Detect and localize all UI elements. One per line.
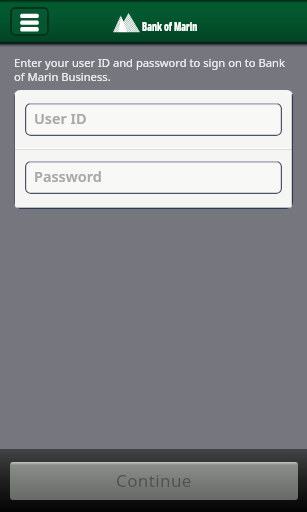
staticText: Enter your user ID and password to sign … [14, 55, 286, 84]
button[interactable]: Open navigation menu [10, 7, 49, 36]
staticText: Password [34, 166, 102, 186]
staticText: User ID [34, 108, 87, 128]
button[interactable]: User ID [25, 103, 282, 136]
staticText: Bank of Marin [142, 18, 198, 34]
button[interactable]: Continue [10, 462, 298, 500]
staticText: Continue [116, 469, 192, 492]
button[interactable]: Password [25, 161, 282, 194]
